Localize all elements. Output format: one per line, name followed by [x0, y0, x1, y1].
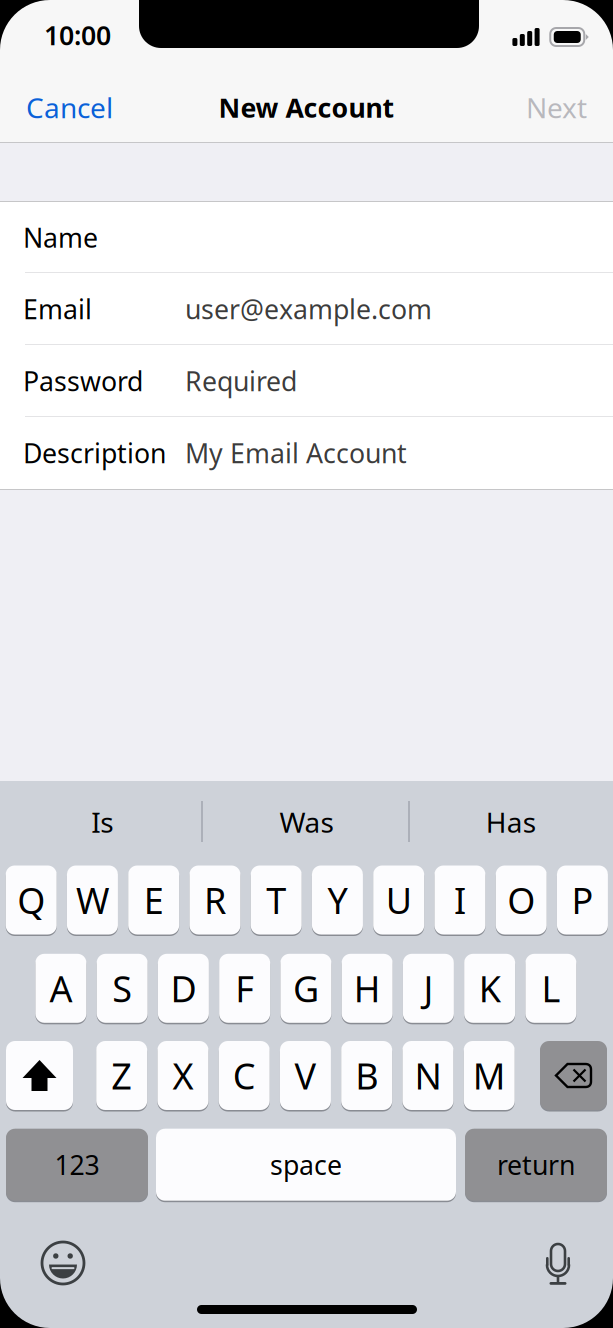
- button[interactable]: C: [219, 1041, 270, 1112]
- staticText: Next: [526, 89, 587, 126]
- staticText: Is: [91, 803, 113, 841]
- staticText: space: [270, 1147, 342, 1182]
- staticText: New Account: [218, 90, 394, 125]
- staticText: Password: [23, 363, 143, 399]
- staticText: L: [541, 964, 560, 1012]
- staticText: 123: [54, 1147, 99, 1182]
- staticText: user@example.com: [185, 291, 432, 327]
- button[interactable]: Y: [312, 865, 363, 936]
- button[interactable]: F: [219, 954, 270, 1025]
- staticText: X: [172, 1052, 193, 1099]
- button[interactable]: A: [35, 954, 86, 1025]
- button[interactable]: T: [251, 865, 302, 936]
- button[interactable]: K: [464, 954, 515, 1025]
- staticText: U: [386, 876, 412, 924]
- button[interactable]: G: [280, 954, 331, 1025]
- staticText: M: [473, 1052, 506, 1099]
- button[interactable]: P: [557, 865, 608, 936]
- button[interactable]: W: [67, 865, 118, 936]
- staticText: Cancel: [26, 89, 113, 126]
- staticText: Y: [327, 876, 347, 924]
- button[interactable]: O: [496, 865, 547, 936]
- staticText: 10:00: [44, 17, 111, 53]
- button[interactable]: Description: [0, 417, 613, 489]
- staticText: Description: [23, 435, 166, 471]
- button[interactable]: M: [464, 1041, 515, 1112]
- staticText: J: [423, 964, 433, 1012]
- button[interactable]: Z: [96, 1041, 147, 1112]
- button[interactable]: H: [342, 954, 393, 1025]
- staticText: Q: [17, 876, 45, 924]
- button[interactable]: Dictation: [545, 1244, 571, 1286]
- button[interactable]: I: [434, 865, 485, 936]
- button[interactable]: D: [158, 954, 209, 1025]
- button[interactable]: B: [341, 1041, 392, 1112]
- staticText: Z: [111, 1052, 132, 1099]
- staticText: W: [76, 876, 109, 924]
- staticText: S: [112, 964, 132, 1012]
- button[interactable]: Next: [467, 72, 613, 143]
- button[interactable]: S: [97, 954, 148, 1025]
- button[interactable]: E: [128, 865, 179, 936]
- staticText: Required: [185, 363, 297, 399]
- staticText: E: [144, 876, 164, 924]
- button[interactable]: L: [525, 954, 576, 1025]
- button[interactable]: U: [373, 865, 424, 936]
- button[interactable]: X: [157, 1041, 208, 1112]
- staticText: Was: [279, 803, 333, 841]
- button[interactable]: Shift: [6, 1041, 73, 1112]
- button[interactable]: Q: [6, 865, 57, 936]
- staticText: Has: [486, 803, 536, 841]
- staticText: B: [355, 1052, 378, 1099]
- button[interactable]: Cancel: [0, 72, 164, 143]
- staticText: My Email Account: [185, 435, 407, 471]
- button[interactable]: Space: [156, 1129, 456, 1203]
- button[interactable]: Was: [204, 781, 409, 863]
- button[interactable]: Numbers: [6, 1129, 148, 1203]
- staticText: V: [294, 1052, 316, 1099]
- button[interactable]: N: [402, 1041, 453, 1112]
- button[interactable]: R: [189, 865, 240, 936]
- staticText: G: [293, 964, 319, 1012]
- button[interactable]: Password: [0, 345, 613, 417]
- staticText: P: [571, 876, 593, 924]
- staticText: D: [170, 964, 196, 1012]
- button[interactable]: Is: [0, 781, 204, 863]
- staticText: Name: [23, 220, 98, 255]
- staticText: R: [204, 876, 226, 924]
- staticText: K: [479, 964, 501, 1012]
- staticText: F: [235, 964, 254, 1012]
- staticText: O: [507, 876, 535, 924]
- button[interactable]: V: [280, 1041, 331, 1112]
- button[interactable]: Return: [465, 1129, 607, 1203]
- button[interactable]: Has: [409, 781, 613, 863]
- staticText: return: [497, 1147, 575, 1182]
- staticText: T: [266, 876, 286, 924]
- staticText: I: [454, 876, 466, 924]
- staticText: Email: [23, 291, 92, 327]
- staticText: C: [233, 1052, 256, 1099]
- button[interactable]: Emoji keyboard: [42, 1242, 84, 1284]
- button[interactable]: Name: [0, 202, 613, 273]
- staticText: A: [49, 964, 72, 1012]
- staticText: N: [414, 1052, 441, 1099]
- button[interactable]: Delete: [540, 1041, 607, 1112]
- button[interactable]: Email: [0, 273, 613, 345]
- button[interactable]: J: [403, 954, 454, 1025]
- staticText: H: [354, 964, 381, 1012]
